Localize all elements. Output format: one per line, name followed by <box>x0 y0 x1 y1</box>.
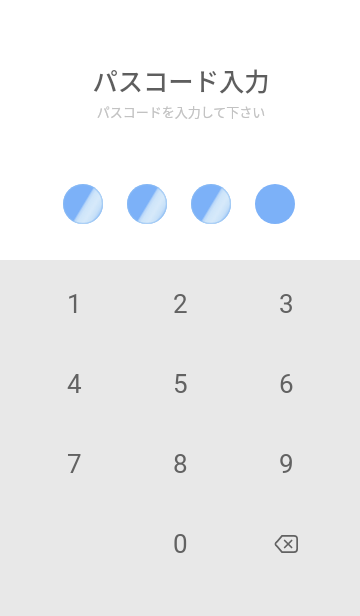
button[interactable]: 0 <box>127 504 233 584</box>
staticText: 8 <box>173 449 188 479</box>
staticText: 4 <box>67 369 82 399</box>
staticText: パスコード入力 <box>1 62 360 99</box>
button[interactable]: 9 <box>233 424 339 504</box>
button[interactable]: Backspace <box>233 504 339 584</box>
button[interactable]: 5 <box>127 344 233 424</box>
button[interactable]: 2 <box>127 264 233 344</box>
staticText: 6 <box>279 369 294 399</box>
staticText: 9 <box>279 449 294 479</box>
staticText: 2 <box>173 289 188 319</box>
button[interactable]: 4 <box>21 344 127 424</box>
button[interactable]: 7 <box>21 424 127 504</box>
button[interactable]: 6 <box>233 344 339 424</box>
staticText: 1 <box>67 289 82 319</box>
staticText: 7 <box>67 449 82 479</box>
staticText: パスコードを入力して下さい <box>1 102 360 121</box>
button[interactable]: 1 <box>21 264 127 344</box>
staticText: 3 <box>279 289 294 319</box>
staticText: 0 <box>173 529 188 559</box>
staticText: 5 <box>173 369 188 399</box>
button[interactable]: 8 <box>127 424 233 504</box>
button[interactable]: 3 <box>233 264 339 344</box>
